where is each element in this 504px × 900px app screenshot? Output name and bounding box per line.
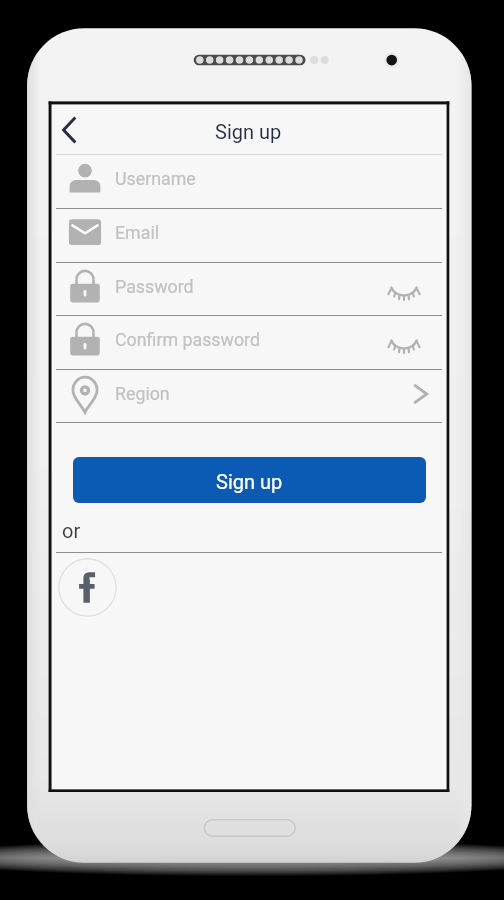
- button[interactable]: Sign up: [73, 457, 426, 503]
- button[interactable]: Username: [52, 154, 447, 208]
- button[interactable]: Back: [46, 107, 92, 153]
- button[interactable]: Password: [52, 262, 447, 316]
- button[interactable]: Choose region: [404, 377, 438, 411]
- button[interactable]: Toggle password visibility: [384, 273, 424, 313]
- staticText: Sign up: [216, 470, 283, 493]
- button[interactable]: Confirm password: [52, 315, 447, 369]
- staticText: Sign up: [215, 120, 282, 143]
- button[interactable]: Region: [52, 369, 447, 423]
- staticText: Confirm password: [115, 329, 260, 350]
- staticText: or: [62, 519, 81, 542]
- staticText: Password: [115, 276, 194, 297]
- button[interactable]: Email: [52, 208, 447, 262]
- staticText: Username: [115, 168, 196, 189]
- button[interactable]: Sign up with Facebook: [58, 558, 117, 617]
- staticText: Email: [115, 222, 160, 243]
- staticText: Region: [115, 383, 170, 404]
- button[interactable]: Toggle password visibility: [384, 326, 424, 366]
